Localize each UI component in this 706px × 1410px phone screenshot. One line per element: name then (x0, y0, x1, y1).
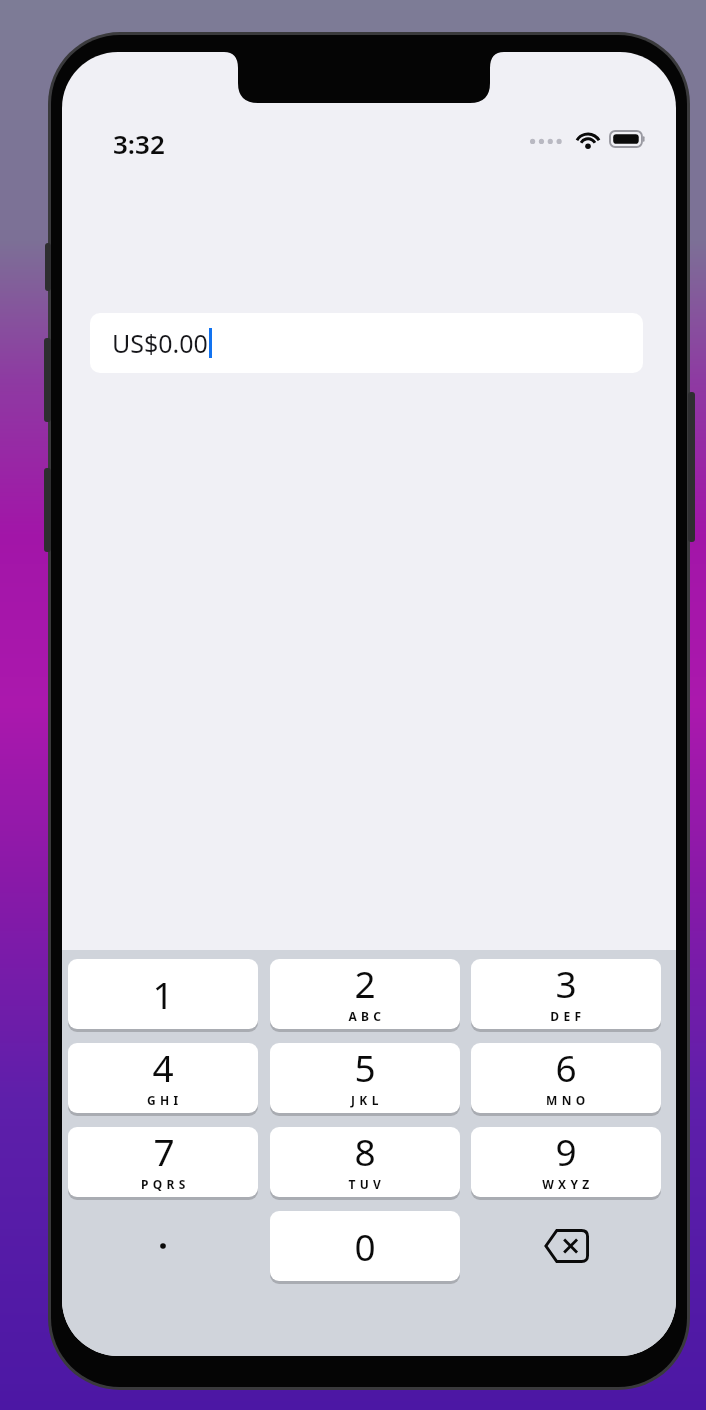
staticText: 3:32 (113, 126, 165, 161)
staticText: D E F (550, 1008, 582, 1024)
staticText: 7 (153, 1127, 175, 1176)
button[interactable]: 5 (270, 1043, 460, 1113)
staticText: P Q R S (141, 1176, 186, 1192)
staticText: 4 (152, 1043, 174, 1092)
staticText: W X Y Z (542, 1176, 590, 1192)
button[interactable]: 9 (471, 1127, 661, 1197)
button[interactable]: 3 (471, 959, 661, 1029)
button[interactable]: US$0.00 (90, 313, 643, 373)
button[interactable]: Backspace (471, 1211, 661, 1281)
staticText: 3 (555, 959, 577, 1008)
button[interactable]: 4 (68, 1043, 258, 1113)
staticText: 5 (354, 1043, 376, 1092)
staticText: M N O (546, 1092, 586, 1108)
staticText: T U V (348, 1176, 382, 1192)
staticText: 2 (354, 959, 376, 1008)
staticText: A B C (348, 1008, 382, 1024)
button[interactable]: 8 (270, 1127, 460, 1197)
button[interactable]: 2 (270, 959, 460, 1029)
staticText: US$0.00 (112, 326, 208, 360)
staticText: 8 (354, 1127, 376, 1176)
staticText: G H I (147, 1092, 179, 1108)
staticText: J K L (351, 1092, 379, 1108)
staticText: 1 (152, 969, 174, 1019)
button[interactable]: 7 (68, 1127, 258, 1197)
button[interactable]: 6 (471, 1043, 661, 1113)
button[interactable]: 0 (270, 1211, 460, 1281)
button[interactable]: 1 (68, 959, 258, 1029)
staticText: 9 (555, 1127, 577, 1176)
staticText: 6 (555, 1043, 577, 1092)
staticText: 0 (354, 1221, 376, 1271)
button[interactable]: Decimal point (68, 1211, 258, 1281)
